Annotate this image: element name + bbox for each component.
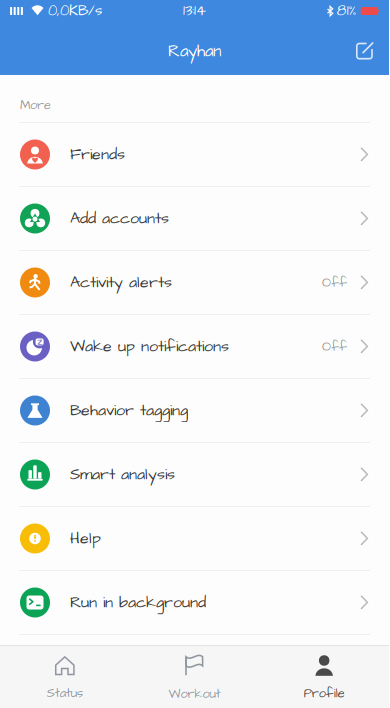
staticText: More (20, 96, 51, 114)
staticText: Off (322, 337, 347, 356)
staticText: 81% (337, 1, 357, 21)
button[interactable]: Run in background (0, 571, 389, 635)
button[interactable]: Help (0, 507, 389, 571)
staticText: Activity alerts (70, 271, 172, 294)
staticText: Workout (168, 685, 220, 703)
staticText: Friends (70, 143, 125, 166)
button[interactable]: Friends (0, 123, 389, 187)
button[interactable]: Smart analysis (0, 443, 389, 507)
staticText: Smart analysis (70, 463, 175, 486)
staticText: Behavior tagging (70, 399, 188, 422)
staticText: Wake up notifications (70, 335, 229, 358)
staticText: Run in background (70, 591, 206, 614)
staticText: Rayhan (168, 40, 221, 63)
staticText: 0,0KB/s (48, 1, 102, 21)
button[interactable]: Profile (259, 646, 389, 708)
staticText: Help (70, 527, 101, 550)
staticText: z (37, 334, 42, 349)
staticText: Profile (304, 685, 345, 702)
button[interactable]: z (0, 315, 389, 379)
staticText: Status (47, 684, 83, 702)
button[interactable]: Compose (343, 25, 387, 71)
staticText: 13:14 (183, 1, 206, 21)
button[interactable]: Workout (130, 646, 259, 708)
button[interactable]: Add accounts (0, 187, 389, 251)
button[interactable]: Behavior tagging (0, 379, 389, 443)
button[interactable]: Status (0, 646, 130, 708)
button[interactable]: Activity alerts (0, 251, 389, 315)
staticText: Off (322, 273, 347, 292)
staticText: Add accounts (70, 207, 169, 230)
